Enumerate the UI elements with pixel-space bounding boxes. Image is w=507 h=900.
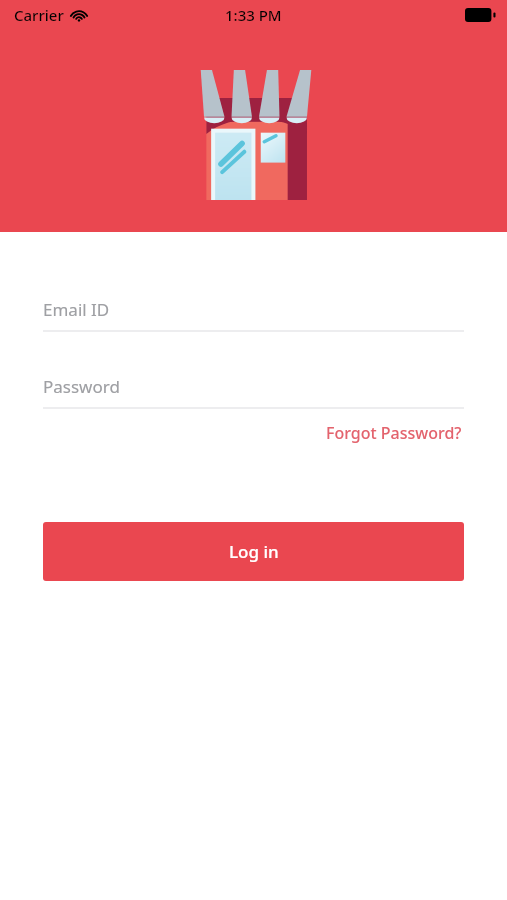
button[interactable]: Forgot Password? (324, 417, 464, 449)
button[interactable]: Email ID (43, 298, 464, 332)
button[interactable]: Log in (43, 522, 464, 581)
staticText: Email ID (43, 298, 110, 321)
other: Shop (197, 64, 314, 200)
staticText: Carrier (14, 5, 64, 25)
staticText: Forgot Password? (326, 422, 462, 444)
staticText: 1:33 PM (225, 5, 282, 25)
staticText: Password (43, 375, 120, 398)
button[interactable]: Password (43, 375, 464, 409)
staticText: Log in (229, 540, 279, 563)
